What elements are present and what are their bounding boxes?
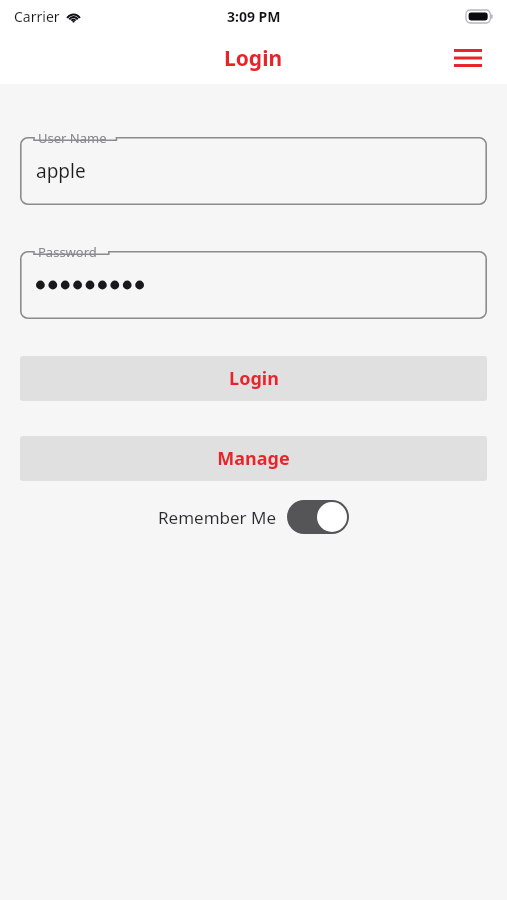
button[interactable]: Menu <box>451 41 485 75</box>
button[interactable]: Login <box>20 356 487 401</box>
other: Remember Me toggle <box>287 500 349 534</box>
staticText: 3:09 PM <box>227 7 281 26</box>
staticText: User Name <box>38 129 107 147</box>
staticText: Remember Me <box>158 506 277 529</box>
button[interactable]: User Name <box>20 137 487 205</box>
button[interactable]: Remember Me <box>158 500 349 534</box>
staticText: Login <box>224 44 283 73</box>
button[interactable]: Password <box>20 251 487 319</box>
staticText: Password <box>38 243 97 261</box>
staticText: Login <box>229 366 279 391</box>
staticText: Carrier <box>14 7 60 26</box>
staticText: Manage <box>217 446 290 471</box>
button[interactable]: Manage <box>20 436 487 481</box>
staticText: apple <box>36 158 86 184</box>
